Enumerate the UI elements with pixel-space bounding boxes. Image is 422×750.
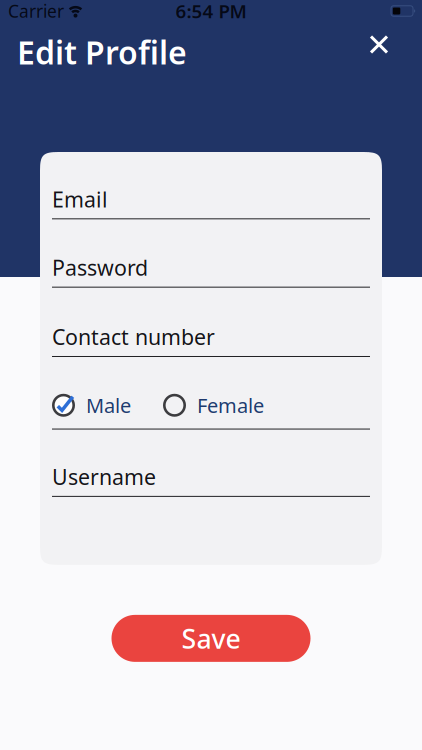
button[interactable]: Username: [52, 462, 370, 497]
button[interactable]: Email: [52, 185, 370, 219]
button[interactable]: Close: [370, 35, 388, 61]
button[interactable]: Password: [52, 253, 370, 288]
staticText: Save: [181, 621, 240, 656]
staticText: Username: [52, 462, 156, 491]
button[interactable]: Female: [163, 392, 264, 419]
staticText: Email: [52, 185, 108, 213]
staticText: Female: [197, 392, 264, 419]
button[interactable]: Save: [111, 615, 310, 662]
staticText: Male: [86, 392, 131, 419]
button[interactable]: Contact number: [52, 323, 370, 357]
staticText: Contact number: [52, 323, 215, 351]
staticText: Edit Profile: [17, 31, 187, 73]
staticText: Password: [52, 253, 148, 282]
button[interactable]: Male: [52, 392, 131, 419]
staticText: 6:54 PM: [175, 0, 246, 23]
staticText: Carrier: [8, 0, 64, 22]
